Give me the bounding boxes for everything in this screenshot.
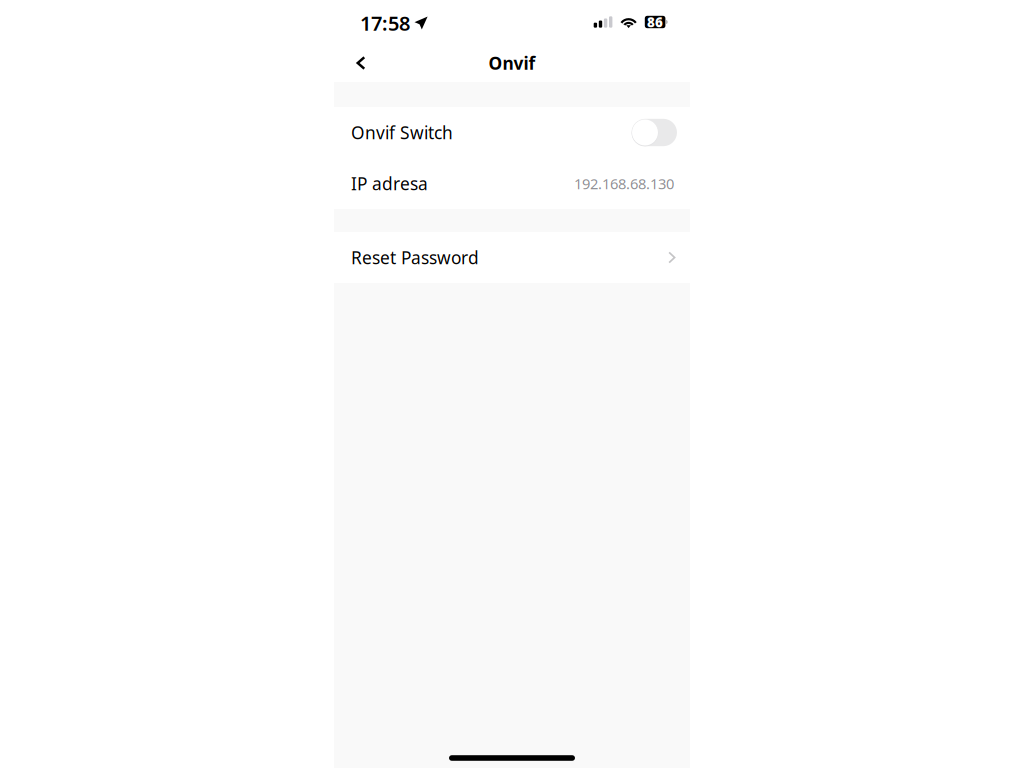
staticText: Onvif [488, 51, 535, 74]
staticText: IP adresa [351, 172, 428, 195]
staticText: Reset Password [351, 246, 479, 269]
button[interactable]: Onvif Switch [334, 107, 690, 158]
staticText: 17:58 [360, 10, 410, 36]
button[interactable]: Back [343, 44, 379, 82]
staticText: Onvif Switch [351, 121, 453, 144]
staticText: 192.168.68.130 [574, 174, 674, 193]
button[interactable]: IP adresa [334, 158, 690, 209]
button[interactable]: Reset Password [334, 232, 690, 283]
staticText: 86 [647, 13, 663, 31]
